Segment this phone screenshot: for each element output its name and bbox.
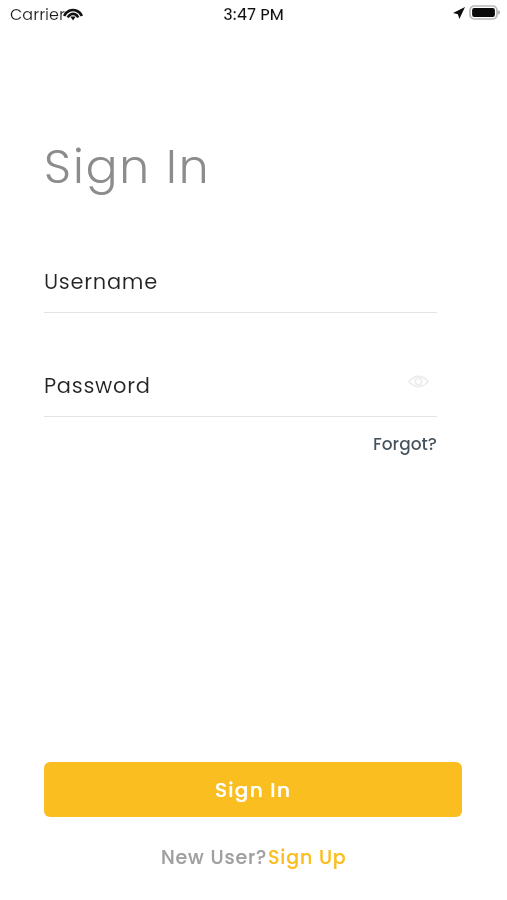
staticText: New User? — [161, 844, 268, 871]
staticText: Sign In — [44, 134, 211, 200]
button[interactable]: Forgot? — [373, 432, 437, 456]
button[interactable]: Username — [44, 267, 437, 313]
button[interactable]: Password — [44, 371, 437, 417]
staticText: Username — [44, 267, 158, 296]
button[interactable]: Sign In — [44, 762, 462, 817]
staticText: Carrier — [10, 3, 65, 25]
staticText: Sign Up — [268, 844, 347, 871]
staticText: Forgot? — [373, 432, 437, 456]
staticText: Sign In — [215, 776, 292, 804]
staticText: Password — [44, 371, 151, 400]
button[interactable]: Sign Up — [268, 844, 347, 871]
button[interactable]: Show password — [405, 368, 431, 394]
staticText: 3:47 PM — [0, 3, 507, 25]
